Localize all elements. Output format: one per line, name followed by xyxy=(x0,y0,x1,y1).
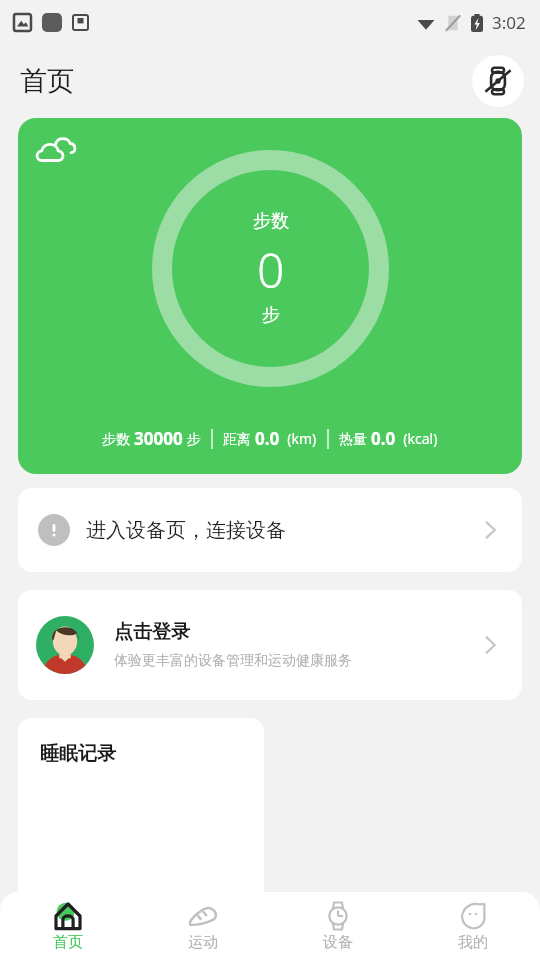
staticText: 设备 xyxy=(323,933,353,952)
staticText: 0.0 xyxy=(255,427,280,450)
button[interactable]: 我的 xyxy=(405,892,540,960)
staticText: (km) xyxy=(280,429,317,448)
staticText: 步数 xyxy=(253,210,289,233)
button[interactable]: 设备 xyxy=(270,892,405,960)
staticText: 我的 xyxy=(458,933,488,952)
staticText: 睡眠记录 xyxy=(40,742,116,766)
staticText: 热量 xyxy=(339,429,371,448)
staticText: 30000 xyxy=(134,427,183,450)
staticText: 0.0 xyxy=(371,427,396,450)
other: Open xyxy=(478,518,502,542)
staticText: 点击登录 xyxy=(114,620,190,644)
staticText: 体验更丰富的设备管理和运动健康服务 xyxy=(114,652,352,670)
staticText: 步 xyxy=(183,429,201,448)
staticText: 步数 xyxy=(102,429,134,448)
staticText: 进入设备页，连接设备 xyxy=(86,518,286,543)
staticText: 首页 xyxy=(53,933,83,952)
staticText: 首页 xyxy=(20,64,74,98)
staticText: (kcal) xyxy=(396,429,438,448)
button[interactable]: 睡眠记录 xyxy=(18,718,264,918)
button[interactable]: 首页 xyxy=(0,892,135,960)
button[interactable]: 运动 xyxy=(135,892,270,960)
staticText: 运动 xyxy=(188,933,218,952)
staticText: 3:02 xyxy=(492,11,526,34)
staticText: 0 xyxy=(257,237,285,302)
staticText: 步 xyxy=(262,304,280,327)
button[interactable]: 进入设备页，连接设备 xyxy=(18,488,522,572)
other: Open xyxy=(478,633,502,657)
button[interactable]: 步数 xyxy=(18,118,522,474)
staticText: 距离 xyxy=(223,429,255,448)
button[interactable]: 点击登录 xyxy=(18,590,522,700)
button[interactable]: Device disconnected xyxy=(472,55,524,107)
